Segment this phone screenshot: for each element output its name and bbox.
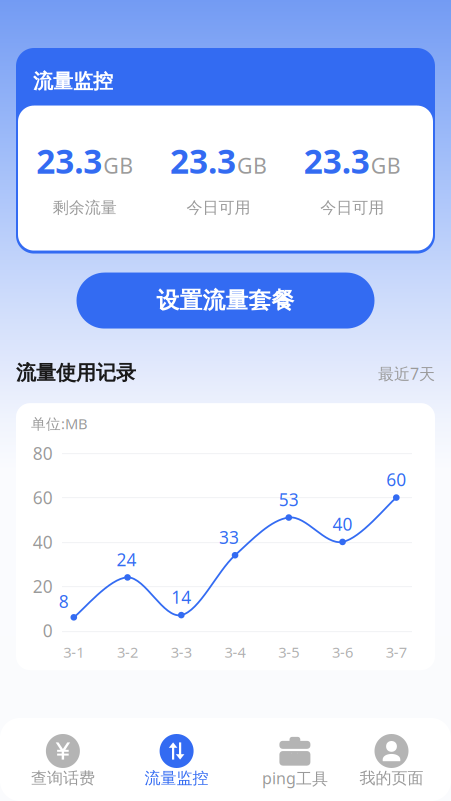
staticText: 14 — [171, 586, 191, 609]
staticText: GB — [371, 151, 401, 179]
staticText: 3-6 — [332, 642, 353, 662]
staticText: 3-1 — [63, 642, 84, 662]
staticText: 单位:MB — [31, 414, 88, 433]
staticText: 3-7 — [386, 642, 407, 662]
staticText: 今日可用 — [320, 198, 384, 218]
staticText: 40 — [33, 530, 53, 553]
staticText: GB — [103, 151, 133, 179]
staticText: 0 — [43, 619, 53, 642]
staticText: 3-2 — [117, 642, 138, 662]
staticText: 3-5 — [278, 642, 299, 662]
staticText: 53 — [279, 488, 299, 511]
button[interactable]: ping工具 — [243, 718, 347, 801]
staticText: 查询话费 — [31, 768, 95, 788]
staticText: 流量使用记录 — [16, 361, 136, 385]
staticText: 60 — [33, 486, 53, 509]
button[interactable]: 设置流量套餐 — [76, 273, 374, 329]
staticText: 23.3 — [36, 139, 102, 183]
staticText: ping工具 — [262, 767, 328, 789]
staticText: 23.3 — [304, 139, 370, 183]
staticText: 流量监控 — [33, 69, 113, 94]
staticText: 流量监控 — [145, 768, 209, 788]
staticText: 设置流量套餐 — [156, 287, 294, 314]
staticText: 33 — [219, 526, 239, 549]
button[interactable]: 我的页面 — [339, 718, 443, 801]
staticText: 今日可用 — [186, 198, 250, 218]
button[interactable]: 查询话费 — [11, 718, 115, 801]
staticText: 40 — [333, 512, 353, 535]
staticText: GB — [237, 151, 267, 179]
staticText: 60 — [386, 468, 406, 491]
staticText: 24 — [116, 548, 136, 571]
staticText: 3-4 — [225, 642, 246, 662]
staticText: 剩余流量 — [53, 198, 117, 218]
staticText: 20 — [33, 575, 53, 598]
staticText: 80 — [33, 442, 53, 465]
staticText: 23.3 — [170, 139, 236, 183]
staticText: 我的页面 — [359, 768, 423, 788]
button[interactable]: 流量监控 — [125, 718, 229, 801]
staticText: 3-3 — [171, 642, 192, 662]
staticText: 最近7天 — [378, 363, 435, 384]
staticText: 8 — [59, 590, 69, 613]
